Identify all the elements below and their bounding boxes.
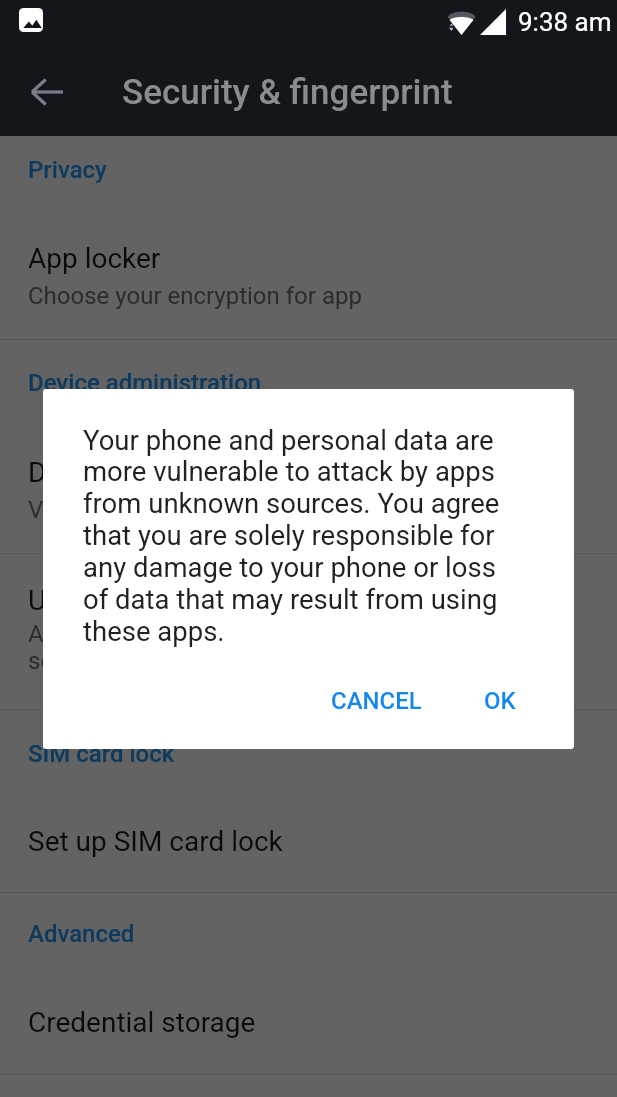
staticText: Credential storage xyxy=(28,1006,256,1039)
staticText: CANCEL xyxy=(331,687,422,715)
button[interactable]: Device admin apps xyxy=(0,426,617,553)
button[interactable]: Set up SIM card lock xyxy=(0,796,617,892)
button[interactable]: Unknown sources xyxy=(0,554,617,709)
button[interactable]: Back xyxy=(11,56,83,128)
staticText: View or deactivate device admin apps xyxy=(28,496,431,524)
staticText: Choose your encryption for app xyxy=(28,282,362,310)
staticText: Device admin apps xyxy=(28,456,264,489)
button[interactable]: CANCEL xyxy=(315,677,438,725)
button[interactable]: Credential storage xyxy=(0,979,617,1074)
staticText: Security & fingerprint xyxy=(122,72,453,113)
staticText: App locker xyxy=(28,242,161,275)
staticText: Privacy xyxy=(28,156,107,184)
staticText: Allow installation of apps from unknown … xyxy=(28,620,529,675)
staticText: SIM card lock xyxy=(28,740,175,768)
staticText: Device administration xyxy=(28,369,262,397)
staticText: 9:38 am xyxy=(518,7,612,37)
staticText: Advanced xyxy=(28,920,135,948)
button[interactable]: OK xyxy=(468,677,532,725)
staticText: Unknown sources xyxy=(28,584,250,617)
staticText: Your phone and personal data are more vu… xyxy=(83,424,517,648)
button[interactable]: App locker xyxy=(0,213,617,339)
staticText: OK xyxy=(484,687,516,715)
staticText: Set up SIM card lock xyxy=(28,825,283,858)
